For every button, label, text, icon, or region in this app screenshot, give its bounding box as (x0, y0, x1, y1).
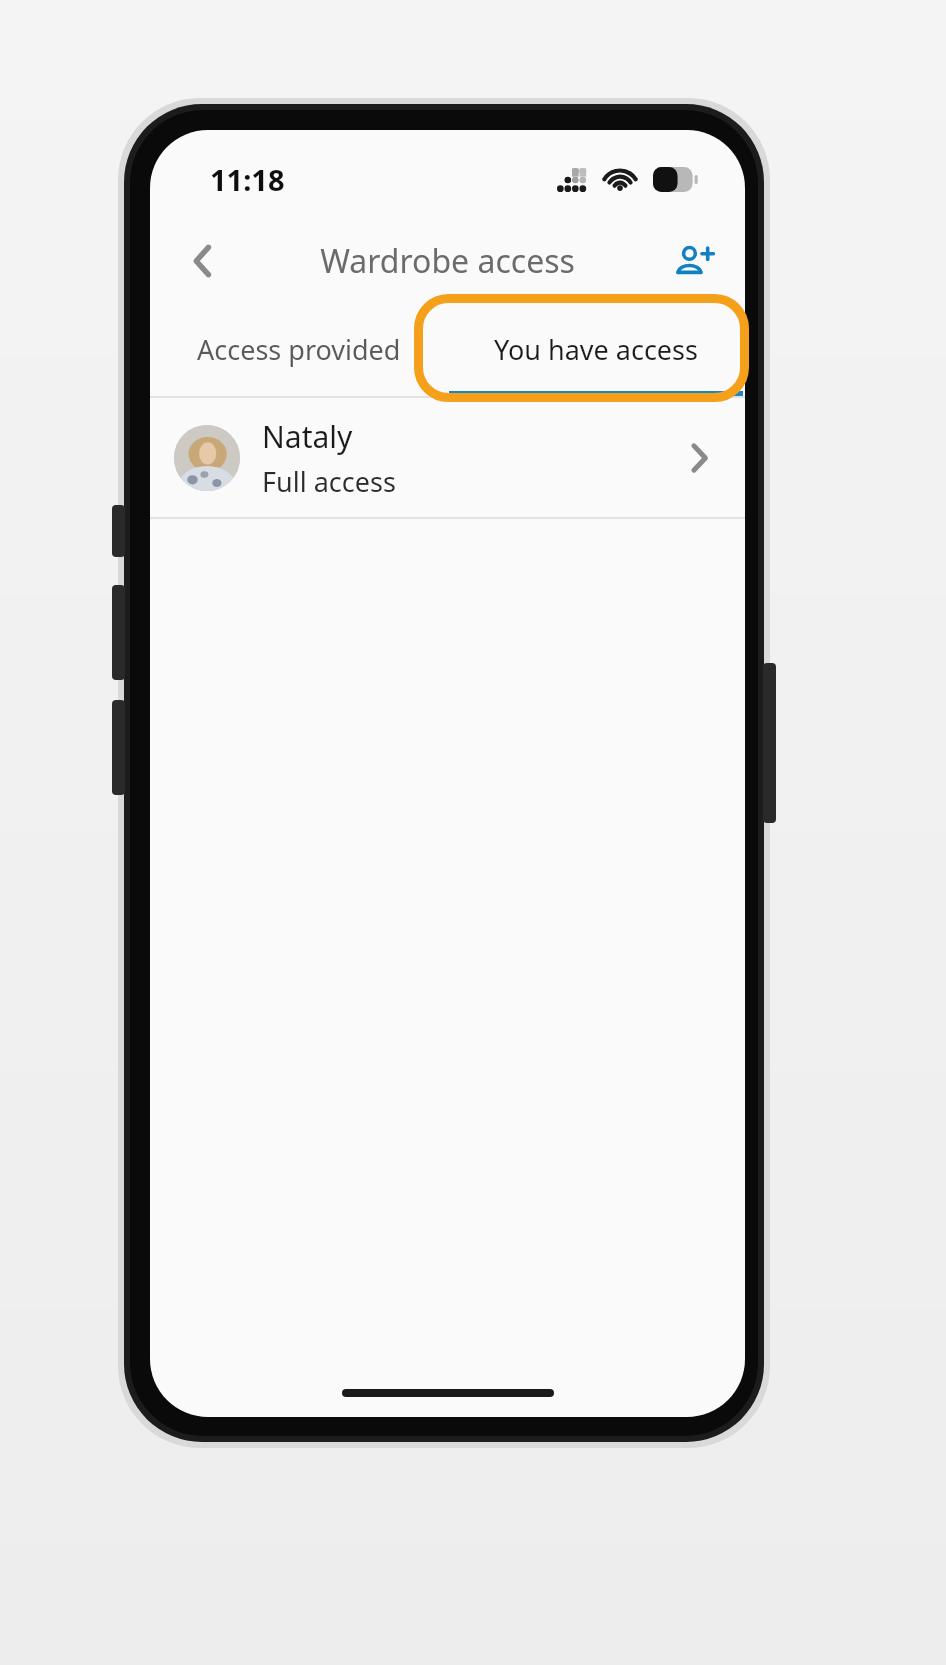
staticText: You have access (494, 331, 698, 368)
staticText: 11:18 (210, 160, 285, 199)
staticText: Access provided (197, 331, 401, 368)
button[interactable]: Access provided (150, 302, 447, 396)
staticText: Full access (262, 463, 396, 500)
button[interactable]: Back (172, 230, 234, 292)
button[interactable]: Add person (665, 232, 723, 290)
button[interactable]: You have access (447, 302, 745, 396)
staticText: Wardrobe access (320, 239, 575, 283)
staticText: Nataly (262, 416, 353, 457)
button[interactable]: Nataly (150, 398, 745, 517)
